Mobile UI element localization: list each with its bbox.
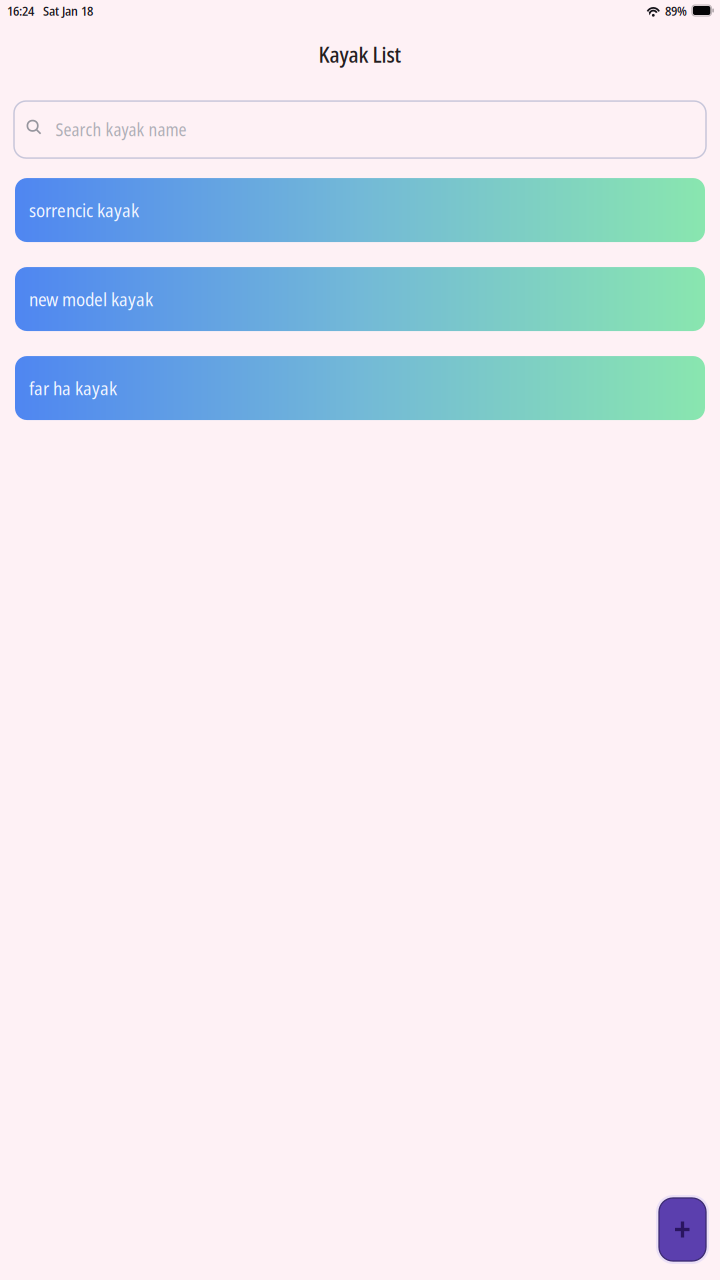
- staticText: 89%: [665, 1, 687, 20]
- button[interactable]: sorrencic kayak: [15, 178, 705, 242]
- staticText: new model kayak: [29, 286, 153, 312]
- staticText: Kayak List: [318, 40, 401, 69]
- button[interactable]: Add kayak: [656, 1195, 709, 1264]
- staticText: 16:24: [7, 1, 34, 20]
- staticText: sorrencic kayak: [29, 197, 139, 223]
- staticText: far ha kayak: [29, 375, 117, 401]
- button[interactable]: far ha kayak: [15, 356, 705, 420]
- staticText: Search kayak name: [55, 118, 186, 141]
- button[interactable]: Search kayak name: [14, 101, 706, 158]
- staticText: Sat Jan 18: [43, 1, 93, 20]
- button[interactable]: new model kayak: [15, 267, 705, 331]
